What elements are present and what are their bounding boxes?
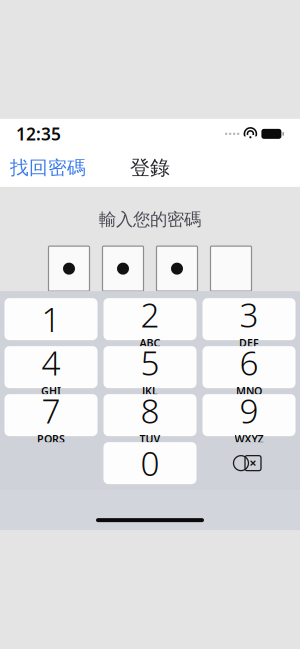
button[interactable]: 8 xyxy=(103,394,196,436)
staticText: 3 xyxy=(239,292,258,337)
button[interactable]: Delete xyxy=(202,442,295,484)
staticText: 5 xyxy=(140,340,159,385)
staticText: PQRS xyxy=(37,432,65,446)
staticText: 登錄 xyxy=(130,156,170,180)
button[interactable]: 3 xyxy=(202,298,295,340)
button[interactable]: 9 xyxy=(202,394,295,436)
button[interactable]: 5 xyxy=(103,346,196,388)
staticText: 9 xyxy=(239,388,258,433)
staticText: 6 xyxy=(239,340,258,385)
staticText: 4 xyxy=(41,340,60,385)
staticText: 2 xyxy=(140,292,159,337)
button[interactable]: 找回密碼 xyxy=(0,148,96,187)
staticText: TUV xyxy=(139,432,160,446)
button[interactable]: 6 xyxy=(202,346,295,388)
staticText: 1 xyxy=(41,297,60,341)
button[interactable]: 0 xyxy=(103,442,196,484)
button[interactable]: 2 xyxy=(103,298,196,340)
button[interactable]: 7 xyxy=(4,394,97,436)
staticText: DEF xyxy=(239,336,259,350)
staticText: WXYZ xyxy=(234,432,263,446)
button[interactable]: 1 xyxy=(4,298,97,340)
staticText: GHI xyxy=(41,384,61,398)
staticText: 輸入您的密碼 xyxy=(99,209,201,230)
staticText: JKL xyxy=(142,384,158,398)
staticText: ABC xyxy=(139,336,160,350)
staticText: MNO xyxy=(236,384,262,398)
staticText: 7 xyxy=(41,388,60,433)
staticText: 0 xyxy=(140,441,159,485)
staticText: 12:35 xyxy=(16,122,61,145)
button[interactable]: 4 xyxy=(4,346,97,388)
staticText: 找回密碼 xyxy=(10,156,86,179)
staticText: 8 xyxy=(140,388,159,433)
